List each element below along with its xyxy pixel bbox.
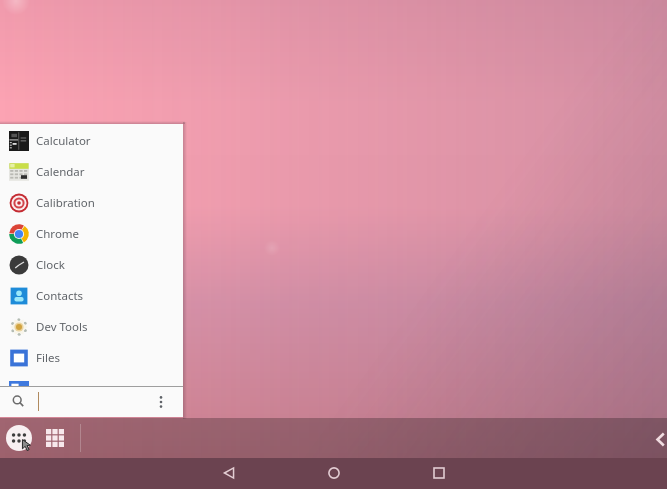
staticText: Files	[36, 350, 60, 366]
staticText: Contacts	[36, 288, 84, 304]
staticText: Calibration	[36, 195, 95, 211]
button[interactable]: Dev Tools	[0, 311, 183, 342]
button[interactable]: Clock	[0, 249, 183, 280]
button[interactable]: Contacts	[0, 280, 183, 311]
button[interactable]: Back	[176, 458, 281, 489]
staticText: Chrome	[36, 226, 80, 242]
button[interactable]: Recent apps	[386, 458, 492, 489]
staticText: Calculator	[36, 133, 91, 149]
button[interactable]: Home	[281, 458, 386, 489]
button[interactable]: Calibration	[0, 187, 183, 218]
staticText: Clock	[36, 257, 65, 273]
button[interactable]: App grid	[42, 425, 68, 451]
button[interactable]: Chrome	[0, 218, 183, 249]
button[interactable]: Expand taskbar	[641, 425, 667, 451]
button[interactable]: All apps	[6, 425, 32, 451]
staticText: Dev Tools	[36, 319, 88, 335]
button[interactable]: Calculator	[0, 125, 183, 156]
button[interactable]: Files	[0, 342, 183, 373]
staticText: Calendar	[36, 164, 85, 180]
button[interactable]: Calendar	[0, 156, 183, 187]
button[interactable]: More options	[151, 392, 171, 412]
